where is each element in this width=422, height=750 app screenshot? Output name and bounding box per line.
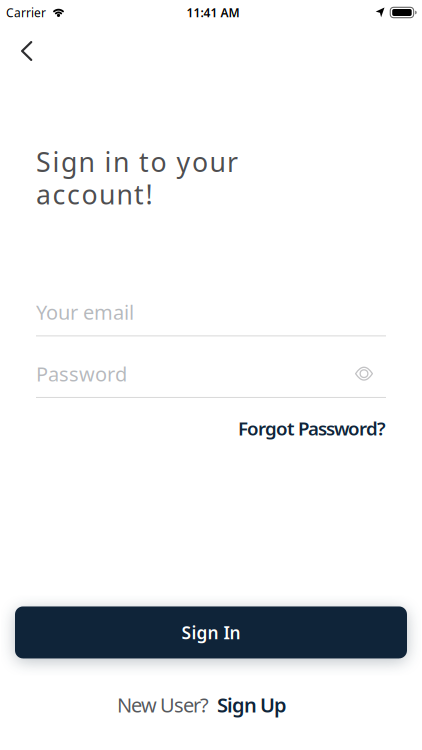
staticText: Your email [36, 299, 134, 325]
staticText: Sign Up [217, 691, 287, 718]
button[interactable]: Sign Up [217, 691, 287, 718]
button[interactable]: Show password [355, 367, 386, 380]
staticText: Sign In [181, 621, 240, 644]
button[interactable]: Back [0, 25, 48, 67]
button[interactable]: Sign In [15, 606, 407, 658]
staticText: Sign in to your account! [36, 144, 238, 212]
button[interactable]: Forgot Password? [238, 416, 386, 441]
staticText: Password [36, 360, 127, 387]
staticText: New User? [117, 691, 209, 718]
staticText: Carrier [6, 4, 46, 20]
staticText: 11:41 AM [186, 4, 239, 20]
staticText: Forgot Password? [238, 416, 386, 441]
